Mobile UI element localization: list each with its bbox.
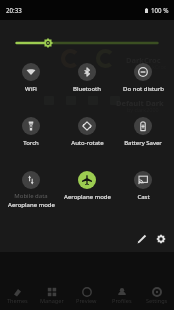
- staticText: Profiles: [112, 297, 132, 305]
- button[interactable]: Themes: [0, 252, 34, 310]
- staticText: 100 %: [151, 6, 169, 14]
- button[interactable]: Preview: [69, 252, 104, 310]
- staticText: Do not disturb: [123, 85, 164, 93]
- button[interactable]: Do not disturb: [115, 63, 171, 93]
- button[interactable]: Edit: [134, 231, 150, 247]
- staticText: 20:33: [6, 6, 22, 14]
- staticText: DarkCroc: [126, 55, 161, 65]
- button[interactable]: WiFi: [3, 63, 59, 93]
- staticText: Cast: [137, 193, 150, 201]
- button[interactable]: Auto-rotate: [59, 117, 115, 147]
- staticText: by DarkCroc: [135, 63, 167, 70]
- staticText: Default Dark: [116, 98, 164, 108]
- button[interactable]: Settings: [153, 231, 169, 247]
- button[interactable]: Cast: [115, 171, 171, 201]
- button[interactable]: Battery Saver: [115, 117, 171, 147]
- staticText: Bluetooth: [73, 85, 101, 93]
- staticText: Themes: [7, 297, 28, 305]
- button[interactable]: Brightness: [0, 37, 174, 49]
- button[interactable]: Mobile data: [3, 171, 59, 209]
- button[interactable]: Torch: [3, 117, 59, 147]
- staticText: Auto-rotate: [71, 139, 104, 147]
- staticText: Settings: [146, 297, 168, 305]
- staticText: Mobile data: [14, 192, 48, 200]
- staticText: Torch: [23, 139, 39, 147]
- button[interactable]: Bluetooth: [59, 63, 115, 93]
- button[interactable]: Profiles: [104, 252, 139, 310]
- staticText: Aeroplane mode: [8, 201, 55, 209]
- button[interactable]: Manager: [34, 252, 69, 310]
- staticText: Preview: [76, 297, 97, 305]
- staticText: Battery Saver: [124, 139, 162, 147]
- staticText: Aeroplane mode: [64, 193, 111, 201]
- staticText: WiFi: [25, 85, 37, 93]
- button[interactable]: Aeroplane mode: [59, 171, 115, 201]
- button[interactable]: Settings: [139, 252, 174, 310]
- staticText: Manager: [40, 297, 64, 305]
